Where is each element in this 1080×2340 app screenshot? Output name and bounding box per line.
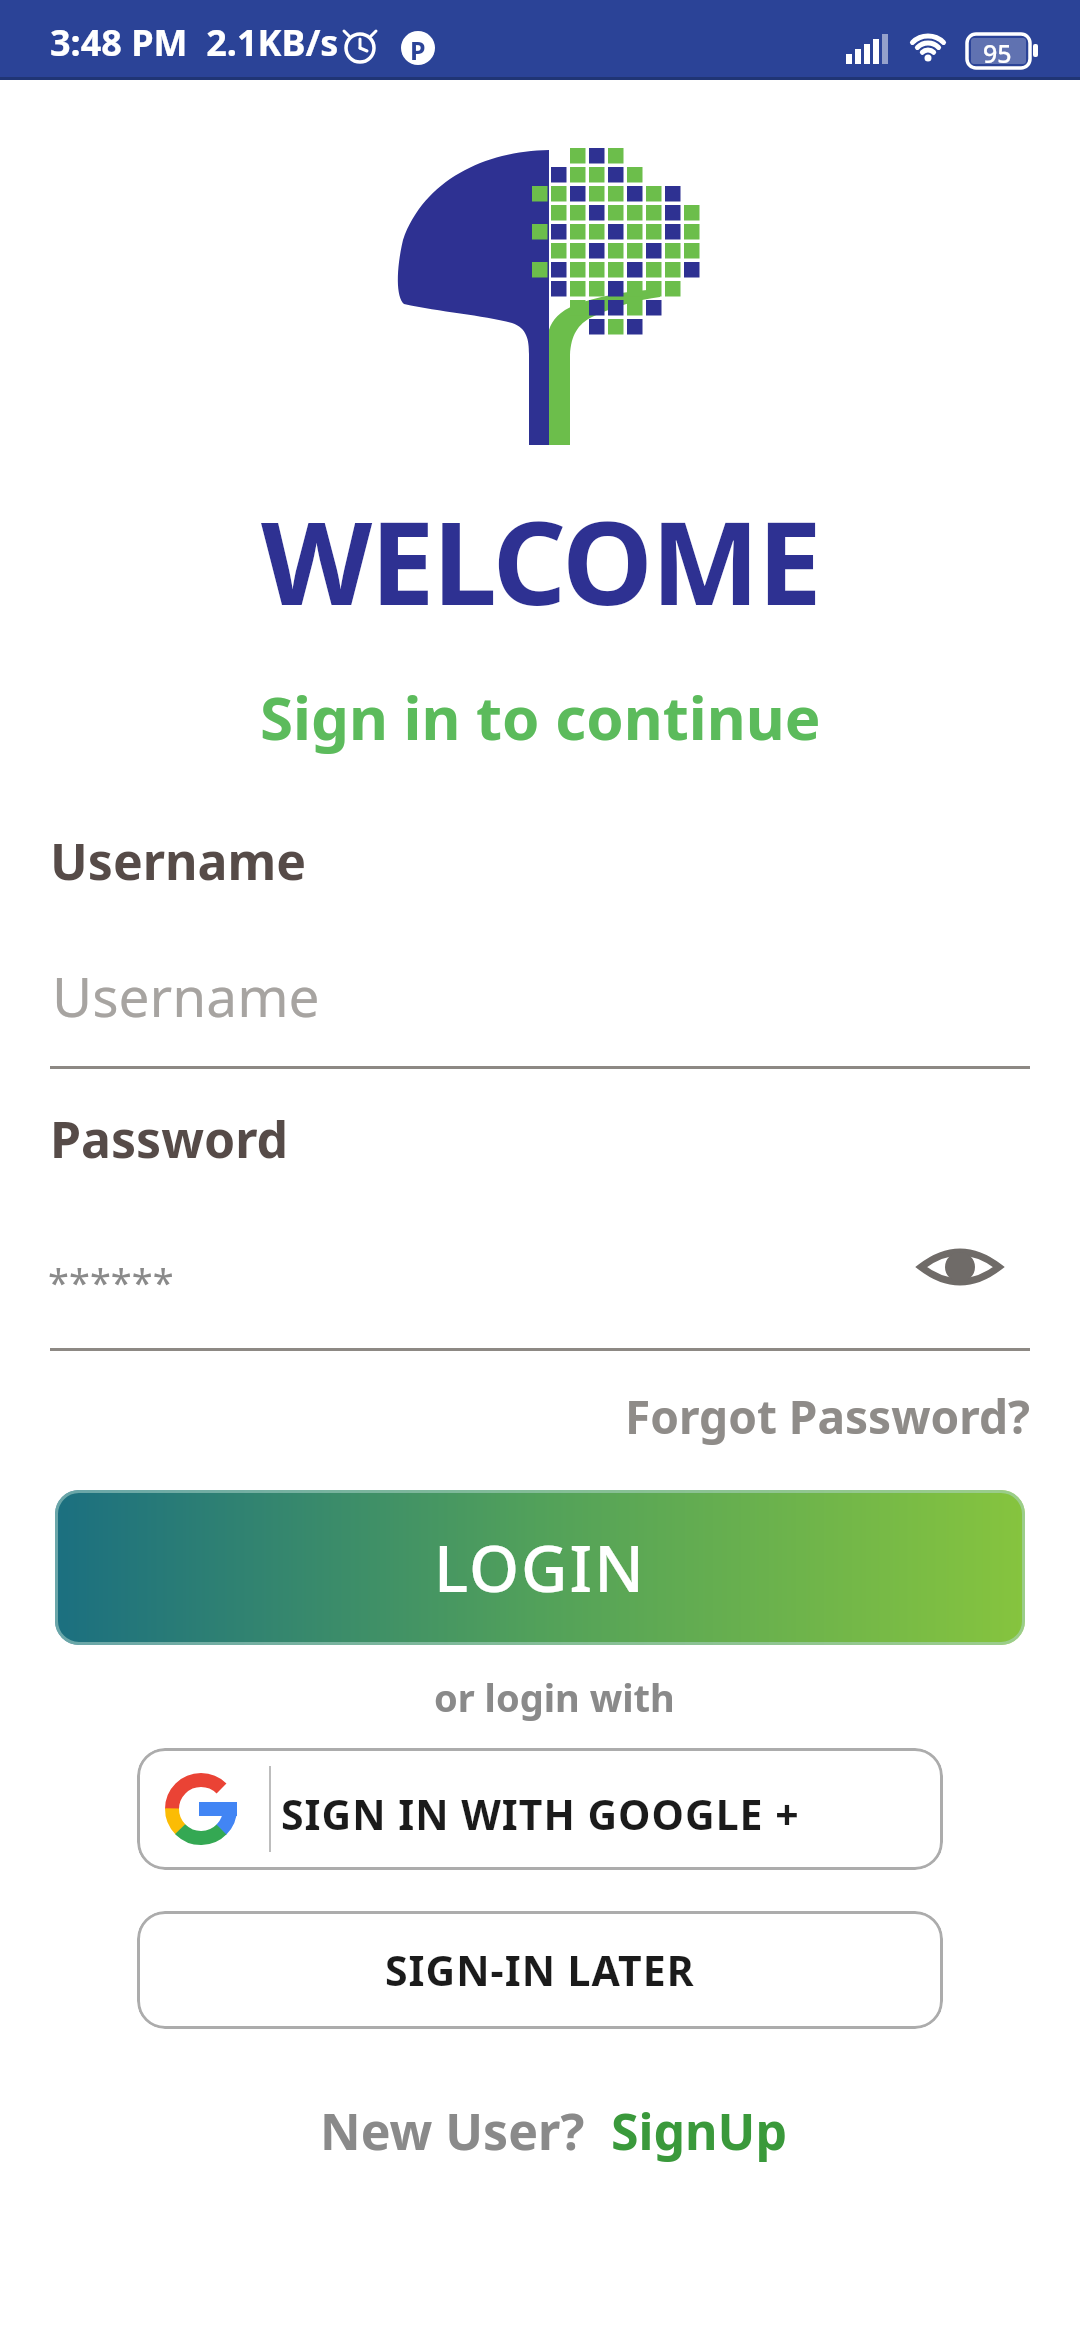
button[interactable]: Forgot Password? (625, 1385, 1030, 1448)
staticText: New User? (320, 2097, 611, 2165)
staticText: SIGN-IN LATER (385, 1942, 695, 1998)
button[interactable] (918, 1236, 1002, 1298)
staticText: or login with (434, 1671, 675, 1723)
staticText: SIGN IN WITH GOOGLE + (281, 1786, 800, 1842)
staticText: Username (52, 958, 320, 1033)
staticText: ****** (48, 1256, 174, 1308)
staticText: P (410, 33, 426, 67)
button[interactable]: SIGN-IN LATER (137, 1911, 943, 2029)
button[interactable]: SIGN IN WITH GOOGLE + (137, 1748, 943, 1870)
staticText: Sign in to continue (260, 676, 821, 758)
staticText: 3:48 PM 2.1KB/s (50, 18, 339, 67)
staticText: 95 (983, 36, 1012, 70)
staticText: WELCOME (261, 482, 820, 639)
button[interactable]: SignUp (611, 2097, 787, 2165)
button[interactable]: LOGIN (55, 1490, 1025, 1645)
staticText: LOGIN (434, 1524, 646, 1611)
staticText: Password (50, 1105, 289, 1173)
staticText: Username (50, 827, 307, 895)
